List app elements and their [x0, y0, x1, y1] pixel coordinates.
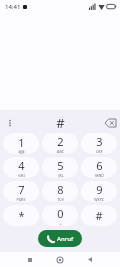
staticText: #: [95, 208, 103, 223]
staticText: +: [59, 221, 62, 226]
staticText: 4: [18, 158, 25, 173]
button[interactable]: 0: [42, 205, 78, 226]
staticText: DEF: [96, 149, 103, 154]
button[interactable]: 6: [81, 157, 117, 178]
staticText: 14:41: [5, 3, 21, 11]
button[interactable]: 8: [42, 181, 78, 202]
staticText: Anruf: [57, 235, 74, 243]
staticText: JKL: [58, 173, 64, 178]
button[interactable]: Home: [49, 252, 71, 267]
button[interactable]: Back: [79, 252, 101, 267]
staticText: #: [56, 114, 65, 132]
button[interactable]: More options: [0, 113, 20, 133]
button[interactable]: 7: [3, 181, 39, 202]
staticText: 9: [96, 182, 103, 197]
button[interactable]: Anruf: [38, 230, 82, 247]
staticText: 1: [18, 135, 25, 150]
staticText: 0: [57, 206, 64, 221]
button[interactable]: #: [81, 205, 117, 226]
button[interactable]: 9: [81, 181, 117, 202]
staticText: MNO: [95, 173, 104, 178]
staticText: 7: [18, 182, 25, 197]
button[interactable]: 4: [3, 157, 39, 178]
button[interactable]: Backspace: [100, 113, 120, 133]
staticText: 5: [57, 158, 64, 173]
button[interactable]: 3: [81, 133, 117, 154]
button[interactable]: *: [3, 205, 39, 226]
staticText: 2: [57, 134, 64, 149]
staticText: *: [18, 208, 25, 223]
staticText: TUV: [57, 197, 64, 202]
button[interactable]: 1: [3, 133, 39, 154]
button[interactable]: 5: [42, 157, 78, 178]
button[interactable]: Recent apps: [19, 252, 41, 267]
staticText: WXYZ: [94, 197, 104, 202]
button[interactable]: 2: [42, 133, 78, 154]
staticText: GHI: [18, 173, 25, 178]
staticText: 3: [96, 134, 103, 149]
staticText: 6: [96, 158, 103, 173]
staticText: 8: [57, 182, 64, 197]
staticText: ABC: [57, 149, 64, 154]
staticText: PQRS: [16, 197, 26, 202]
